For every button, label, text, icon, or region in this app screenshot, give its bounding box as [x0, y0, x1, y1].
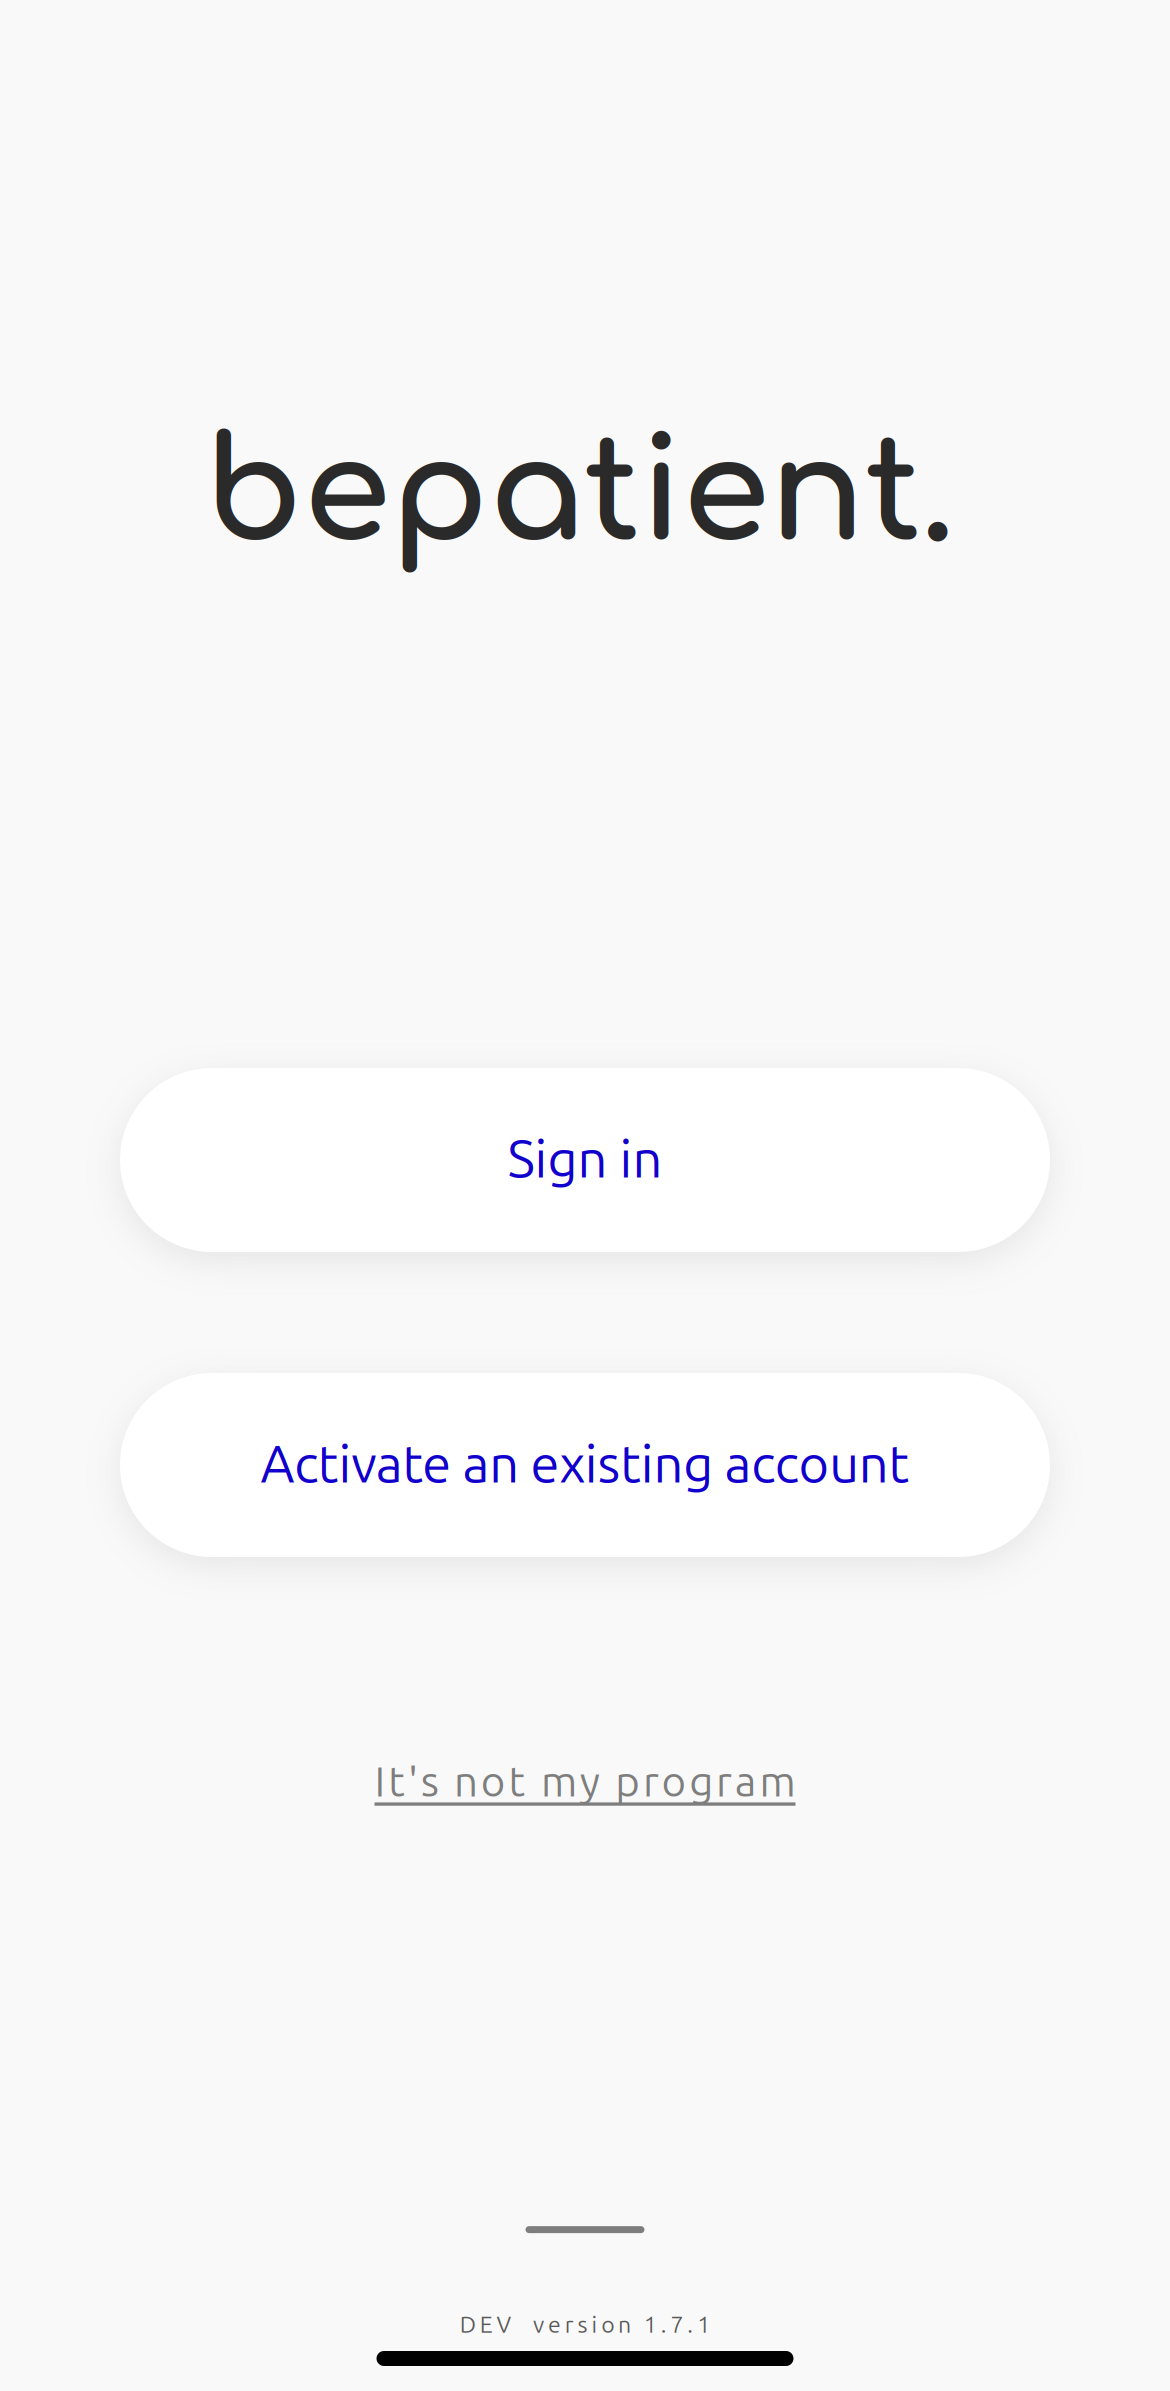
button[interactable]: Sign in [120, 1068, 1050, 1252]
staticText: Sign in [507, 1129, 662, 1187]
staticText: It's not my program [374, 1757, 795, 1805]
staticText: bepatient. [204, 416, 954, 572]
staticText: DEV version 1.7.1 [460, 2311, 710, 2337]
staticText: Activate an existing account [260, 1434, 910, 1492]
button[interactable]: Activate an existing account [120, 1373, 1050, 1557]
button[interactable]: It's not my program [355, 1749, 815, 1813]
